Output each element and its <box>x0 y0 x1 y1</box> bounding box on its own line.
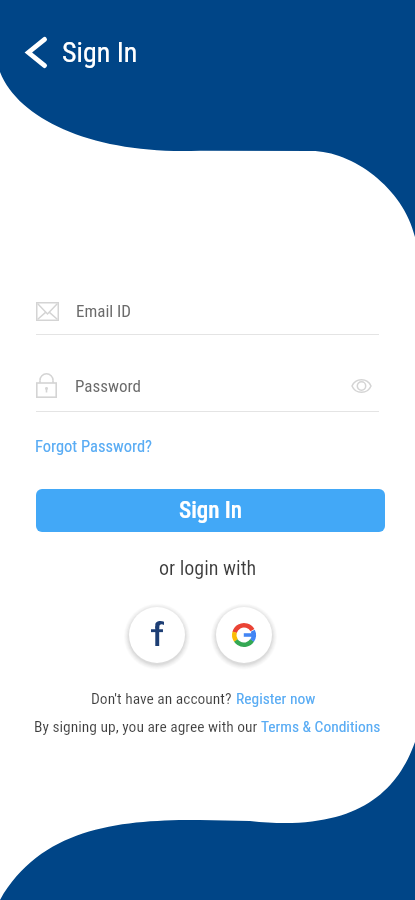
button[interactable]: Forgot Password? <box>35 437 153 456</box>
staticText: Sign In <box>179 497 243 524</box>
staticText: or login with <box>159 556 257 579</box>
staticText: Email ID <box>76 301 132 321</box>
staticText: Sign In <box>62 36 138 69</box>
button[interactable]: Sign in with Google <box>216 607 272 663</box>
staticText: By signing up, you are agree with our <box>34 718 261 736</box>
staticText: Don't have an account? <box>91 690 236 708</box>
staticText: Terms & Conditions <box>261 718 381 736</box>
staticText: Forgot Password? <box>35 437 153 456</box>
button[interactable]: Sign In <box>36 489 385 532</box>
staticText: Password <box>75 376 142 396</box>
button[interactable]: Back <box>14 30 58 74</box>
button[interactable]: Sign in with Facebook <box>129 607 185 663</box>
staticText: Register now <box>236 690 316 708</box>
button[interactable]: Show password <box>348 373 374 399</box>
button[interactable]: Terms & Conditions <box>261 718 381 736</box>
button[interactable]: Register now <box>236 690 316 708</box>
